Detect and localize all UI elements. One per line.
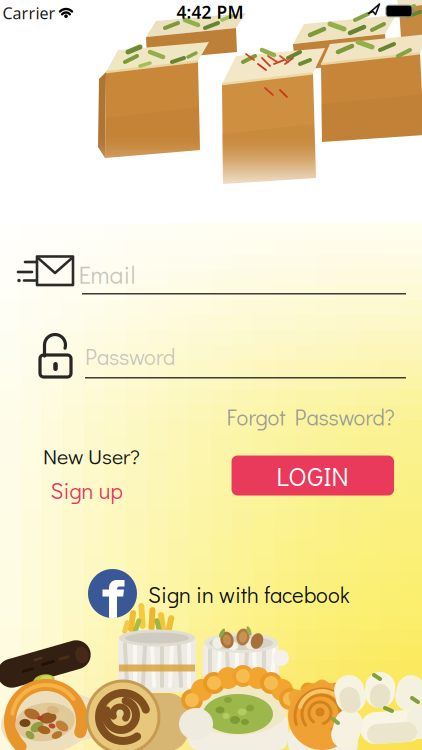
staticText: Sign in with facebook <box>148 580 350 609</box>
button[interactable]: Password <box>17 330 407 382</box>
button[interactable]: Sign in with facebook <box>88 569 358 618</box>
staticText: Forgot Password? <box>226 403 394 431</box>
staticText: Sign up <box>50 476 122 505</box>
staticText: New User? <box>43 442 140 470</box>
button[interactable]: Forgot Password? <box>226 403 394 431</box>
staticText: Password <box>85 342 175 371</box>
staticText: Email <box>78 258 135 290</box>
button[interactable]: LOGIN <box>231 455 394 495</box>
button[interactable]: Email <box>17 248 407 298</box>
staticText: LOGIN <box>276 458 349 493</box>
staticText: 4:42 PM <box>176 0 243 23</box>
staticText: Carrier <box>2 2 55 24</box>
button[interactable]: Sign up <box>50 476 122 505</box>
